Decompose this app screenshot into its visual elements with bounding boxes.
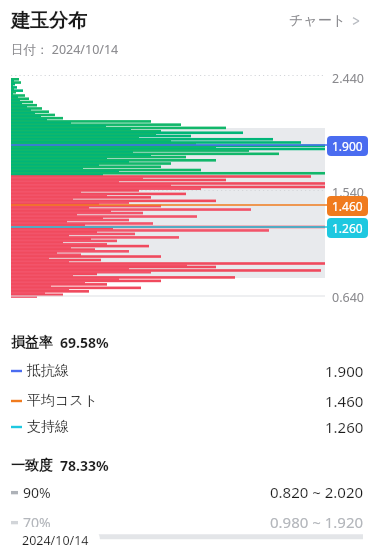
staticText: 2.440: [332, 70, 364, 87]
staticText: 抵抗線: [27, 362, 69, 380]
staticText: 1.260: [325, 417, 364, 437]
staticText: 2024/10/14: [22, 532, 89, 549]
button[interactable]: 90%: [0, 482, 375, 502]
button[interactable]: チャート: [285, 8, 364, 34]
staticText: 0.640: [332, 289, 364, 306]
staticText: 69.58%: [60, 333, 109, 352]
staticText: 1.460: [332, 198, 363, 214]
staticText: 一致度: [11, 457, 53, 475]
staticText: 1.900: [325, 361, 364, 381]
staticText: 平均コスト: [27, 392, 98, 410]
staticText: 78.33%: [60, 456, 109, 475]
staticText: 1.460: [325, 391, 364, 411]
button[interactable]: 2024/10/14: [11, 527, 100, 554]
button[interactable]: 抵抗線: [0, 361, 375, 381]
staticText: 建玉分布: [11, 9, 87, 33]
button[interactable]: 70%: [0, 512, 375, 532]
button[interactable]: 平均コスト: [0, 391, 375, 411]
staticText: 0.980 ~ 1.920: [270, 512, 364, 532]
staticText: 支持線: [27, 418, 69, 436]
button[interactable]: 支持線: [0, 417, 375, 437]
staticText: 1.900: [332, 138, 363, 154]
staticText: 日付： 2024/10/14: [11, 41, 119, 58]
button[interactable]: 1.460: [327, 196, 368, 216]
staticText: チャート: [289, 12, 346, 30]
button[interactable]: 1.900: [327, 136, 368, 156]
staticText: 1.260: [332, 220, 363, 236]
staticText: 1.540: [332, 184, 364, 201]
staticText: 70%: [23, 513, 51, 532]
staticText: 0.820 ~ 2.020: [270, 482, 364, 502]
staticText: 損益率: [11, 334, 53, 352]
button[interactable]: 1.260: [327, 218, 368, 238]
staticText: 90%: [23, 483, 51, 502]
